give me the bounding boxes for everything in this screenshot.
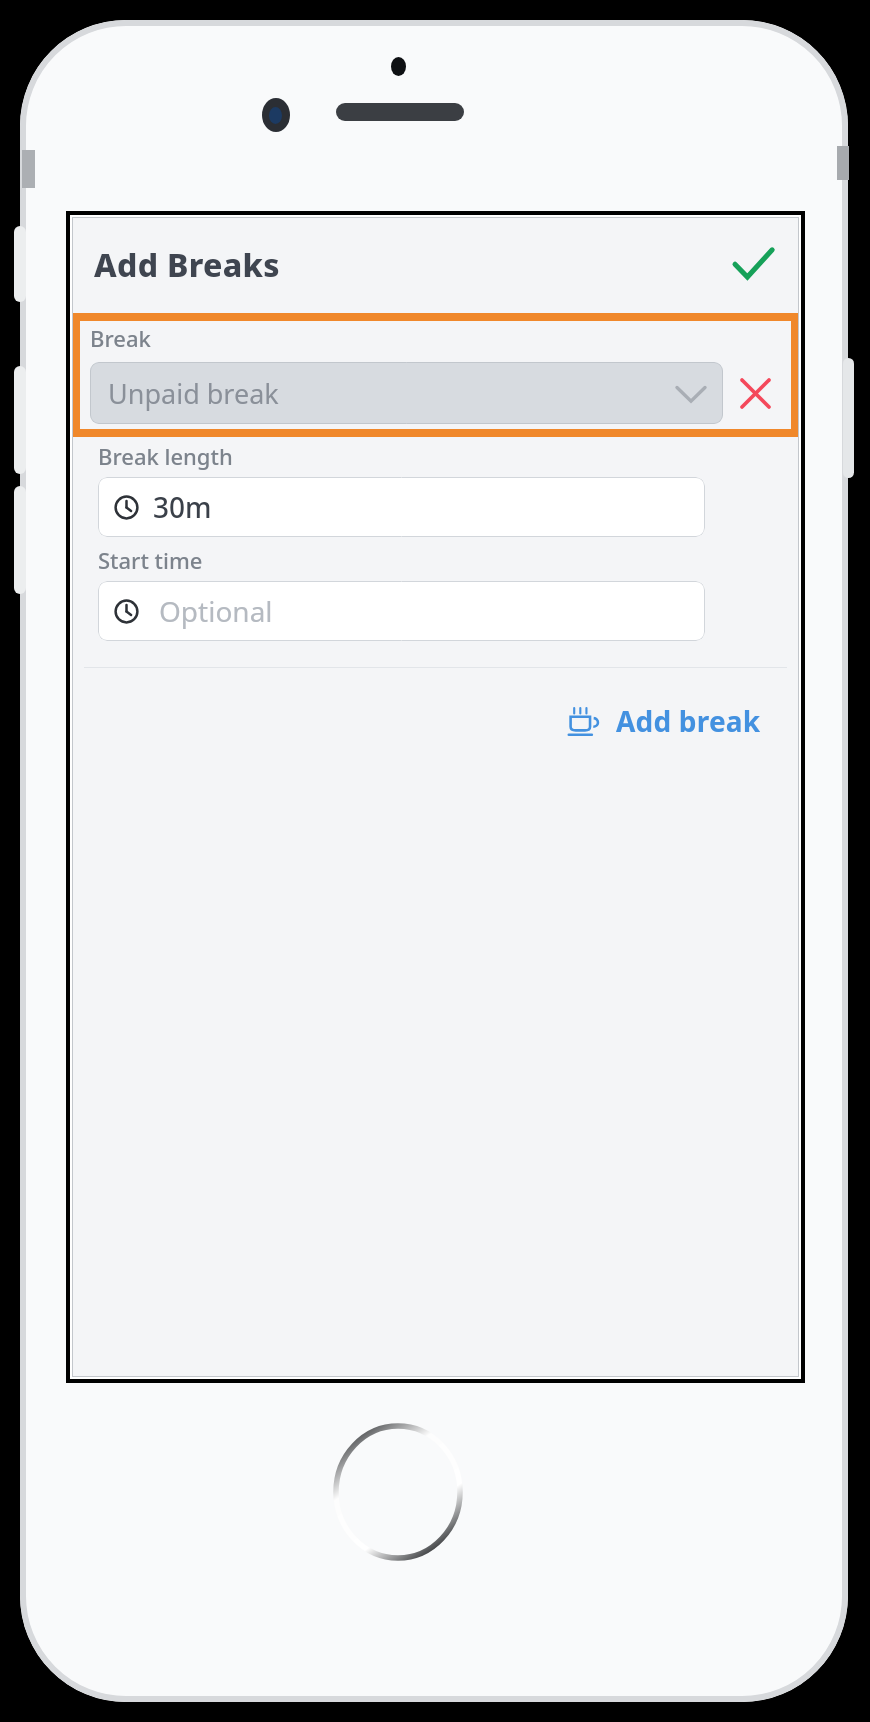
staticText: 30m bbox=[153, 488, 212, 526]
button[interactable]: Optional bbox=[98, 581, 705, 641]
staticText: Start time bbox=[98, 545, 203, 575]
staticText: Unpaid break bbox=[108, 375, 279, 412]
button[interactable]: Remove break bbox=[723, 361, 787, 425]
button[interactable]: Add break bbox=[555, 690, 773, 752]
staticText: Break length bbox=[98, 441, 233, 471]
staticText: Add Breaks bbox=[94, 243, 280, 287]
button[interactable]: Unpaid break bbox=[90, 362, 723, 424]
staticText: Add break bbox=[616, 702, 761, 740]
staticText: Break bbox=[90, 323, 151, 353]
staticText: Optional bbox=[159, 592, 273, 630]
button[interactable]: 30m bbox=[98, 477, 705, 537]
button[interactable]: Save breaks bbox=[725, 237, 781, 293]
